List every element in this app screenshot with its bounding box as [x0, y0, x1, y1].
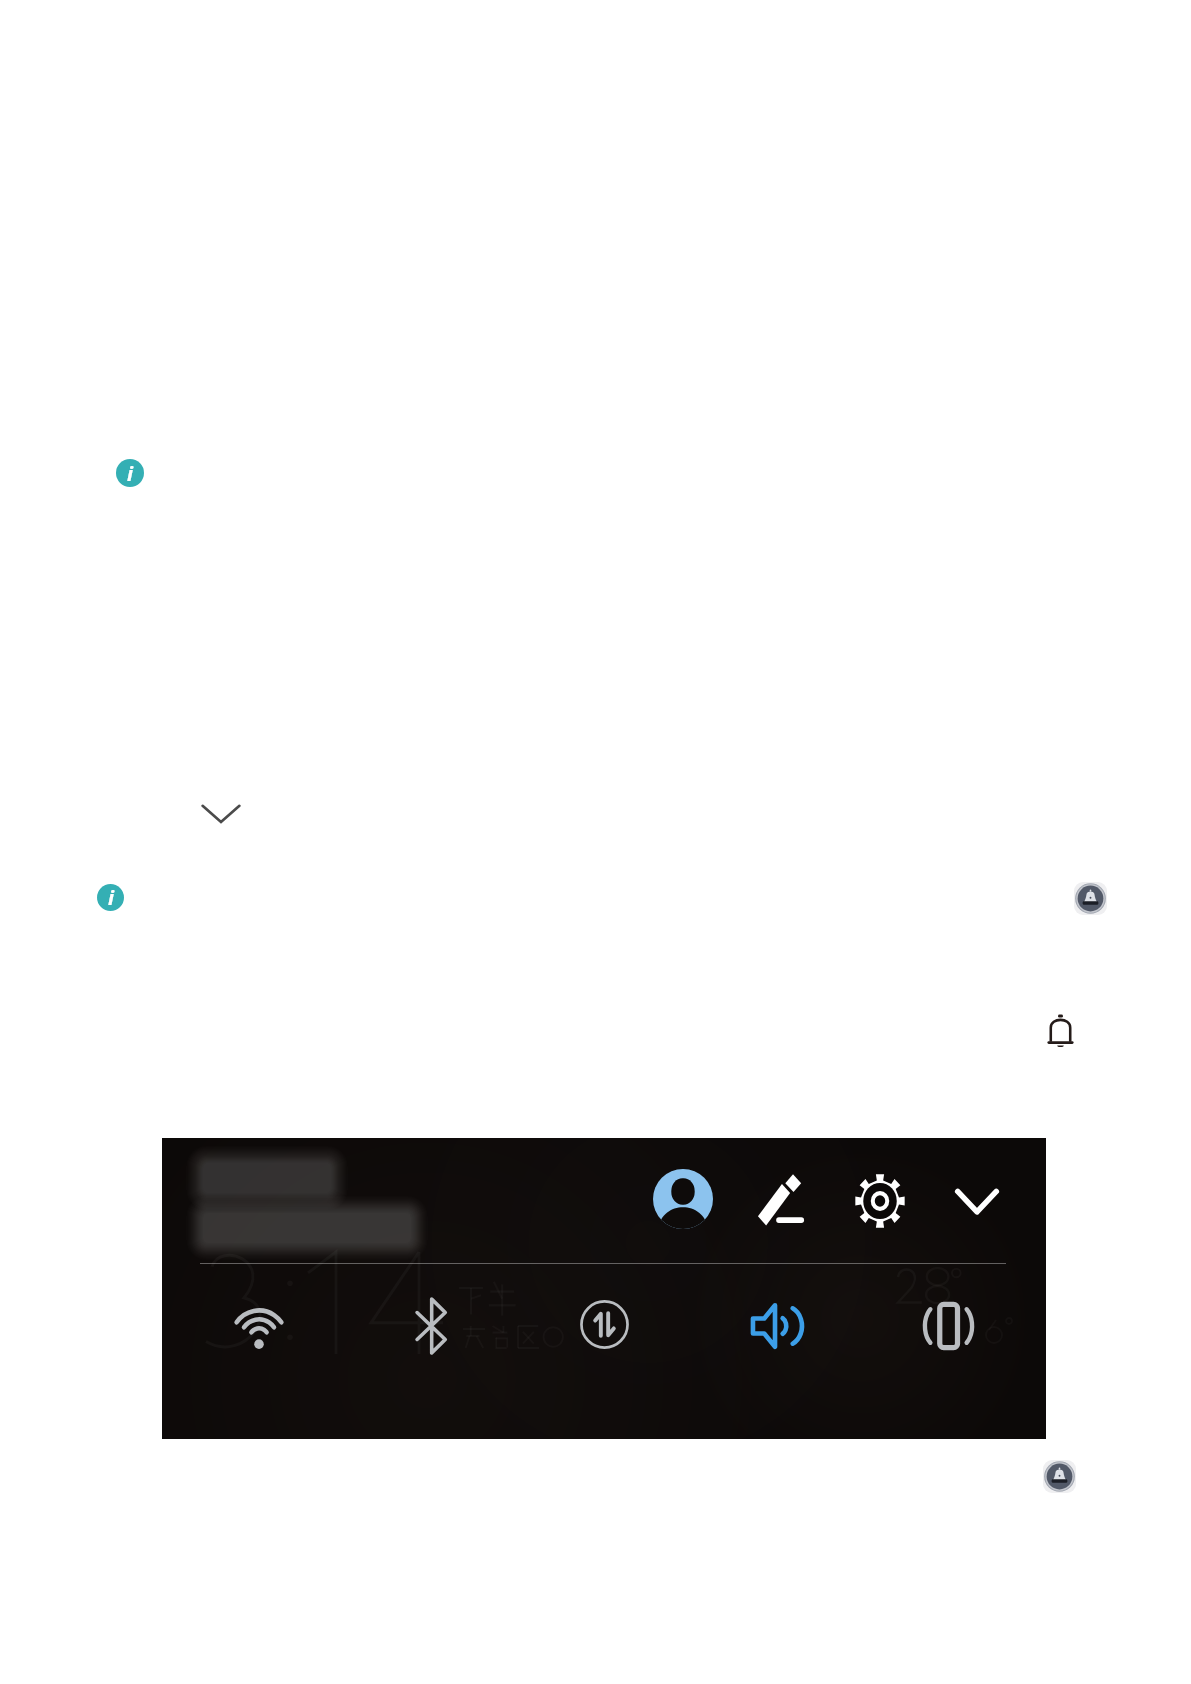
button[interactable]: Sound — [751, 1304, 800, 1348]
button[interactable]: Vibrate — [922, 1303, 975, 1349]
staticText: i — [127, 460, 133, 487]
button[interactable]: Collapse — [954, 1184, 1000, 1218]
button[interactable]: Edit — [757, 1172, 805, 1226]
button[interactable]: Expand — [194, 792, 248, 832]
button[interactable]: Mobile data — [580, 1300, 629, 1349]
button[interactable]: Info — [97, 884, 124, 911]
button[interactable]: Account — [653, 1169, 713, 1229]
button[interactable]: Wi-Fi — [232, 1300, 286, 1348]
staticText: i — [108, 884, 114, 911]
button[interactable]: Bluetooth — [414, 1298, 448, 1354]
button[interactable]: Sounds app — [1043, 1460, 1076, 1493]
button[interactable]: Settings — [855, 1174, 905, 1228]
button[interactable]: Sounds app — [1074, 882, 1107, 915]
button[interactable]: Info — [116, 459, 144, 487]
button[interactable]: Notifications — [1042, 1011, 1078, 1053]
